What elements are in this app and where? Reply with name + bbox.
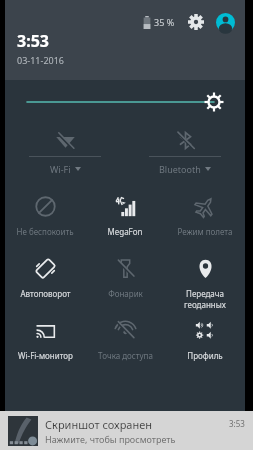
button[interactable]: Автоповорот [5,248,85,310]
button[interactable]: MegaFon [85,186,165,248]
button[interactable]: Передача геоданных [165,248,245,310]
staticText: 3:53 [17,30,49,52]
staticText: Bluetooth [159,163,201,175]
staticText: Wi-Fi-монитор [18,350,73,361]
button[interactable]: Brightness [5,80,245,124]
staticText: Автоповорот [20,288,71,299]
staticText: Профиль [187,350,223,361]
button[interactable]: Профиль [165,310,245,372]
button[interactable]: Не беспокоить [5,186,85,248]
button[interactable]: Точка доступа [85,310,165,372]
staticText: MegaFon [107,226,143,237]
staticText: 3:53 [229,418,245,429]
button[interactable]: Wi-Fi-монитор [5,310,85,372]
button[interactable]: User profile [213,10,237,34]
button[interactable]: Wi-Fi [5,124,125,182]
staticText: Режим полета [177,226,233,237]
button[interactable]: Фонарик [85,248,165,310]
staticText: Точка доступа [98,350,153,361]
staticText: Нажмите, чтобы просмотреть [45,433,176,445]
staticText: 03-11-2016 [17,54,64,66]
button[interactable]: Bluetooth [125,124,245,182]
button[interactable]: Settings [185,11,207,33]
button[interactable]: Режим полета [165,186,245,248]
staticText: 35 % [154,16,175,28]
button[interactable]: Скриншот сохранен [0,411,253,450]
staticText: Скриншот сохранен [45,417,153,432]
staticText: Фонарик [108,288,143,299]
staticText: Не беспокоить [16,226,74,237]
staticText: Wi-Fi [50,163,71,175]
staticText: Передача геоданных [166,288,244,310]
